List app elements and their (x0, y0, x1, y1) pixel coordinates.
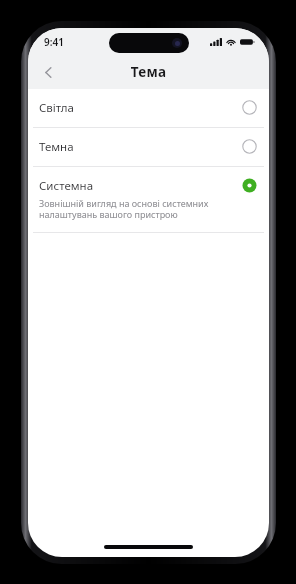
staticText: Тема (63, 63, 234, 81)
button[interactable]: Системна (28, 167, 269, 232)
staticText: Зовнішній вигляд на основі системних нал… (39, 197, 209, 221)
button[interactable]: Back (33, 57, 63, 87)
button[interactable]: Темна (28, 128, 269, 166)
button[interactable]: Світла (28, 89, 269, 127)
staticText: 9:41 (44, 35, 64, 49)
staticText: Світла (39, 100, 74, 116)
staticText: Темна (39, 139, 74, 155)
staticText: Системна (39, 178, 94, 194)
